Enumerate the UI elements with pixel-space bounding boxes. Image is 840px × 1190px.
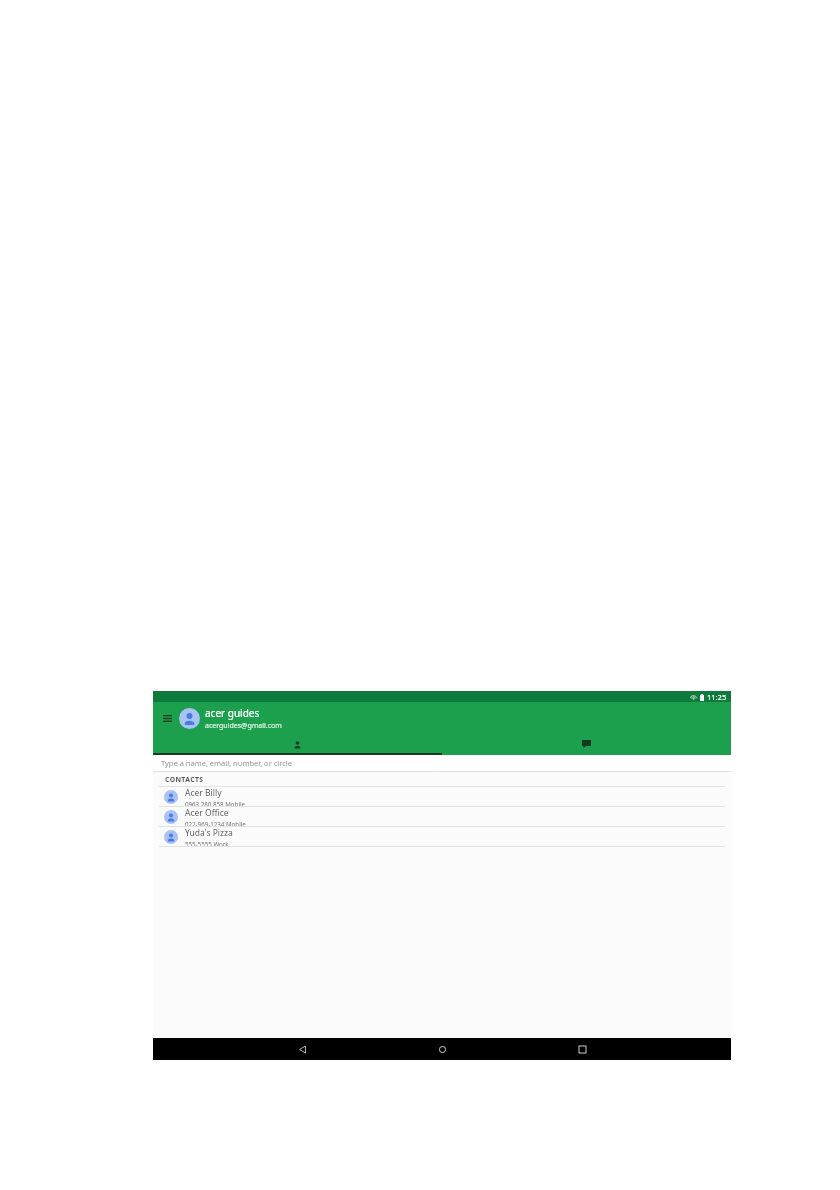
button[interactable]: Messages tab	[442, 735, 731, 755]
staticText: acer guides	[205, 706, 260, 720]
staticText: Acer Billy	[185, 787, 222, 799]
staticText: 0963 280 858 Mobile	[185, 800, 246, 806]
button[interactable]: Acer Office	[153, 807, 731, 826]
button[interactable]: Back	[293, 1040, 311, 1058]
staticText: 11:25	[707, 692, 727, 702]
staticText: Yuda's Pizza	[185, 827, 233, 839]
button[interactable]: Acer Billy	[153, 787, 731, 806]
button[interactable]: Open navigation menu	[159, 710, 176, 727]
staticText: acerguides@gmail.com	[205, 721, 282, 731]
staticText: CONTACTS	[165, 775, 204, 784]
button[interactable]: Account avatar	[179, 708, 200, 729]
button[interactable]: Recent apps	[573, 1040, 591, 1058]
button[interactable]: Home	[433, 1040, 451, 1058]
staticText: Type a name, email, number, or circle	[161, 758, 292, 768]
button[interactable]: Contacts tab	[153, 735, 442, 755]
button[interactable]: Type a name, email, number, or circle	[153, 755, 731, 771]
staticText: Acer Office	[185, 807, 229, 819]
staticText: 555-5555 Work	[185, 840, 229, 846]
staticText: 022-969-1234 Mobile	[185, 820, 246, 826]
button[interactable]: Yuda's Pizza	[153, 827, 731, 846]
